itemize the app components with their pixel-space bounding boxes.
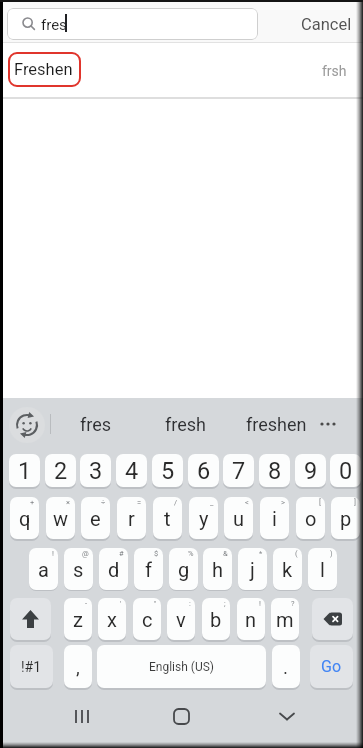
staticText: s — [73, 558, 84, 581]
staticText: , — [76, 656, 80, 678]
button[interactable]: 0 — [330, 454, 361, 487]
button[interactable] — [9, 407, 45, 443]
staticText: l — [320, 558, 325, 581]
staticText: t — [164, 507, 171, 530]
button[interactable]: r — [117, 497, 146, 539]
button[interactable]: 5 — [152, 454, 183, 487]
button[interactable]: . — [272, 645, 300, 688]
button[interactable]: l — [308, 548, 337, 590]
staticText: ) — [330, 549, 333, 558]
button[interactable]: j — [238, 548, 267, 590]
staticText: * — [259, 549, 263, 558]
button[interactable]: 2 — [45, 454, 76, 487]
button[interactable]: g — [169, 548, 198, 590]
button[interactable]: h — [203, 548, 232, 590]
button[interactable] — [157, 695, 207, 740]
button[interactable]: !#1 — [10, 645, 53, 688]
button[interactable]: 9 — [295, 454, 326, 487]
button[interactable]: p — [331, 497, 360, 539]
button[interactable]: y — [189, 497, 218, 539]
staticText: 4 — [125, 457, 139, 485]
button[interactable]: c — [133, 598, 161, 640]
button[interactable] — [57, 695, 107, 740]
button[interactable]: w — [46, 497, 75, 539]
button[interactable]: freshen — [236, 404, 316, 444]
button[interactable]: 4 — [116, 454, 147, 487]
staticText: frsh — [322, 63, 347, 79]
button[interactable]: d — [99, 548, 128, 590]
staticText: ÷ — [101, 498, 106, 507]
button[interactable]: i — [260, 497, 289, 539]
staticText: 8 — [268, 457, 282, 485]
button[interactable]: o — [296, 497, 325, 539]
staticText: > — [281, 498, 285, 507]
staticText: - — [85, 599, 88, 608]
button[interactable]: u — [224, 497, 253, 539]
button[interactable]: e — [81, 497, 110, 539]
button[interactable]: 6 — [188, 454, 219, 487]
staticText: i — [272, 507, 277, 530]
staticText: Freshen — [14, 60, 73, 79]
staticText: a — [38, 558, 49, 581]
staticText: x — [107, 608, 117, 631]
staticText: fresh — [165, 414, 206, 435]
button[interactable]: Freshen — [0, 43, 363, 97]
button[interactable] — [312, 598, 353, 640]
button[interactable]: Cancel — [295, 8, 357, 40]
staticText: 1 — [18, 457, 32, 485]
button[interactable]: 1 — [9, 454, 40, 487]
staticText: + — [30, 498, 35, 507]
staticText: & — [223, 549, 228, 558]
button[interactable]: f — [134, 548, 163, 590]
staticText: ! — [52, 549, 54, 558]
button[interactable]: fres — [7, 8, 258, 40]
button[interactable]: 8 — [259, 454, 290, 487]
button[interactable]: fres — [56, 404, 136, 444]
button[interactable]: fresh — [145, 404, 225, 444]
staticText: n — [245, 608, 257, 631]
button[interactable]: k — [273, 548, 302, 590]
staticText: ? — [291, 599, 295, 608]
staticText: 6 — [197, 457, 211, 485]
staticText: p — [340, 507, 352, 530]
button[interactable]: 3 — [80, 454, 111, 487]
staticText: = — [137, 498, 142, 507]
staticText: q — [19, 507, 31, 530]
button[interactable]: a — [29, 548, 58, 590]
staticText: o — [305, 507, 317, 530]
button[interactable]: m — [271, 598, 299, 640]
staticText: # — [119, 549, 124, 558]
staticText: 3 — [89, 457, 103, 485]
staticText: b — [210, 608, 222, 631]
button[interactable]: z — [64, 598, 92, 640]
staticText: English (US) — [149, 660, 214, 674]
button[interactable]: , — [64, 645, 92, 688]
button[interactable]: n — [237, 598, 265, 640]
button[interactable] — [262, 695, 312, 740]
button[interactable]: t — [153, 497, 182, 539]
staticText: m — [276, 608, 294, 631]
staticText: g — [178, 558, 190, 581]
button[interactable]: x — [98, 598, 126, 640]
button[interactable]: v — [167, 598, 195, 640]
staticText: ] — [354, 498, 356, 507]
staticText: % — [188, 549, 194, 558]
staticText: 7 — [232, 457, 246, 485]
staticText: j — [250, 558, 255, 581]
staticText: z — [73, 608, 83, 631]
button[interactable]: q — [10, 497, 39, 539]
staticText: : — [189, 599, 191, 608]
staticText: " — [154, 599, 157, 608]
staticText: f — [145, 558, 152, 581]
staticText: !#1 — [21, 659, 42, 675]
button[interactable]: b — [202, 598, 230, 640]
button[interactable] — [10, 598, 51, 640]
button[interactable]: English (US) — [97, 645, 266, 688]
button[interactable]: 7 — [223, 454, 254, 487]
staticText: ; — [224, 599, 226, 608]
staticText: Cancel — [301, 15, 352, 34]
staticText: Go — [321, 657, 342, 676]
button[interactable]: Go — [310, 645, 353, 688]
button[interactable]: s — [64, 548, 93, 590]
staticText: 5 — [161, 457, 175, 485]
